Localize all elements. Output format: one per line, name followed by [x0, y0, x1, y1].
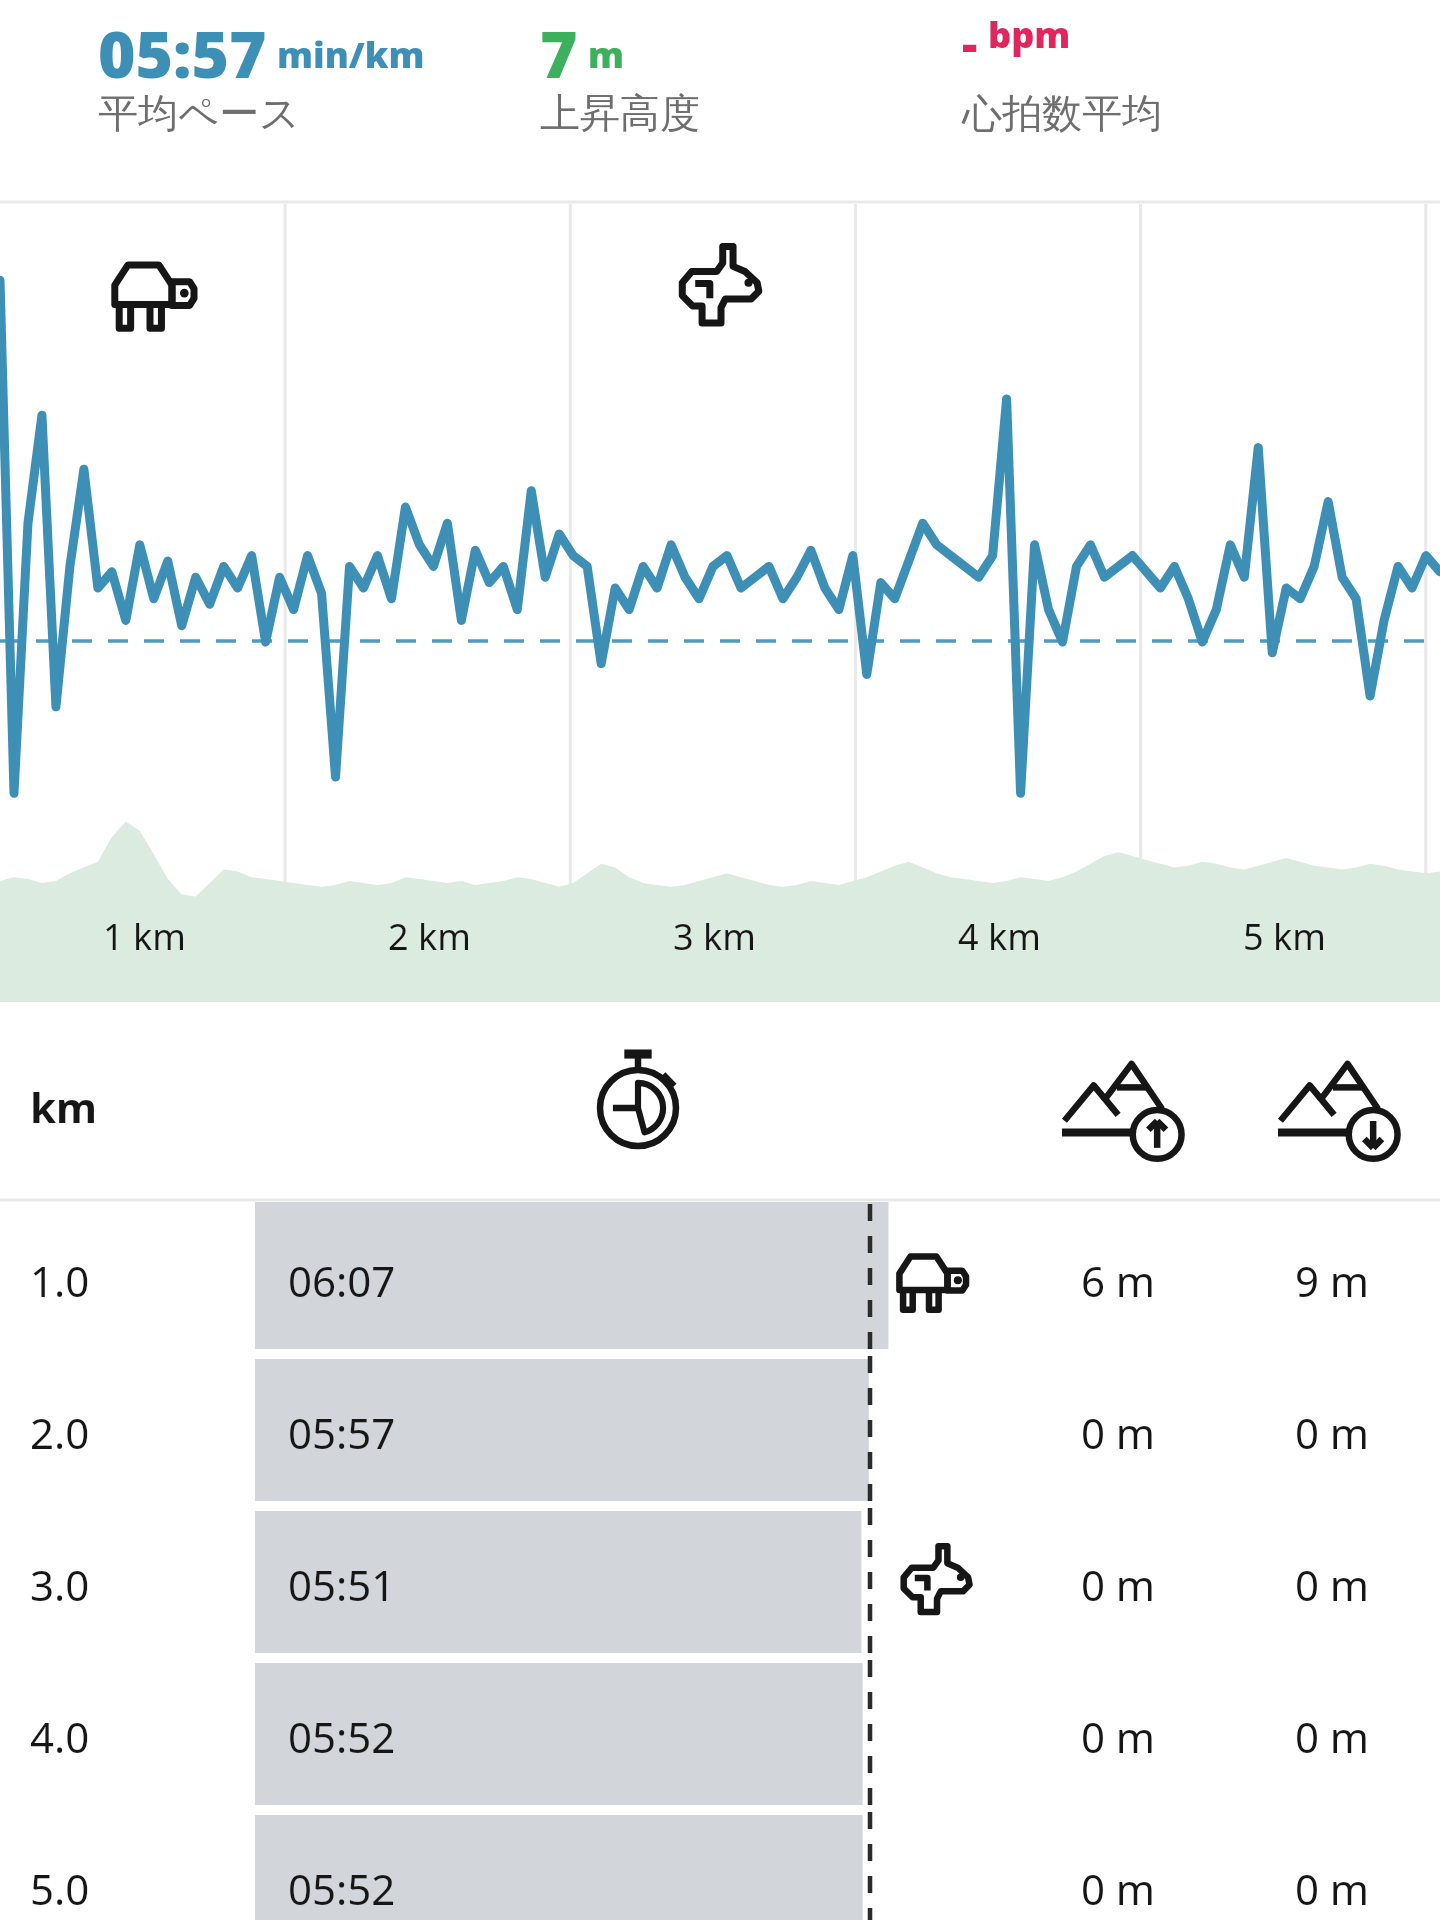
staticText: 0 m: [1038, 1708, 1198, 1765]
button[interactable]: 7: [540, 0, 900, 200]
staticText: 心拍数平均: [962, 88, 1162, 138]
staticText: 6 m: [1038, 1252, 1198, 1309]
staticText: 0 m: [1038, 1404, 1198, 1461]
button[interactable]: 5.0: [0, 1810, 1440, 1920]
button[interactable]: Lap time: [580, 1040, 710, 1170]
button[interactable]: -: [962, 0, 1322, 200]
staticText: 1 km: [72, 912, 217, 961]
staticText: min/km: [277, 30, 425, 79]
staticText: 2 km: [357, 912, 502, 961]
staticText: 0 m: [1038, 1556, 1198, 1613]
staticText: 0 m: [1038, 1860, 1198, 1917]
staticText: 05:52: [288, 1860, 396, 1917]
button[interactable]: 3.0: [0, 1506, 1440, 1658]
staticText: 05:51: [288, 1556, 396, 1613]
staticText: 5.0: [30, 1860, 90, 1917]
staticText: 2.0: [30, 1404, 90, 1461]
staticText: 06:07: [288, 1252, 396, 1309]
button[interactable]: 2.0: [0, 1354, 1440, 1506]
staticText: 4.0: [30, 1708, 90, 1765]
staticText: 4 km: [927, 912, 1072, 961]
staticText: 0 m: [1252, 1556, 1412, 1613]
staticText: 0 m: [1252, 1404, 1412, 1461]
staticText: 5 km: [1212, 912, 1357, 961]
staticText: 0 m: [1252, 1860, 1412, 1917]
staticText: bpm: [988, 10, 1071, 59]
button[interactable]: 1.0: [0, 1202, 1440, 1354]
staticText: 7: [540, 10, 578, 97]
button[interactable]: Elevation gain: [1050, 1040, 1190, 1170]
staticText: 平均ペース: [98, 88, 300, 138]
staticText: 05:57: [288, 1404, 396, 1461]
button[interactable]: 4.0: [0, 1658, 1440, 1810]
staticText: 上昇高度: [540, 88, 700, 138]
staticText: -: [962, 10, 978, 75]
staticText: 9 m: [1252, 1252, 1412, 1309]
staticText: m: [588, 30, 625, 79]
staticText: 1.0: [30, 1252, 90, 1309]
button[interactable]: Elevation loss: [1266, 1040, 1406, 1170]
button[interactable]: 05:57: [98, 0, 458, 200]
staticText: 3.0: [30, 1556, 90, 1613]
staticText: 05:52: [288, 1708, 396, 1765]
staticText: 0 m: [1252, 1708, 1412, 1765]
staticText: km: [30, 1078, 97, 1135]
staticText: 3 km: [642, 912, 787, 961]
staticText: 05:57: [98, 10, 267, 97]
